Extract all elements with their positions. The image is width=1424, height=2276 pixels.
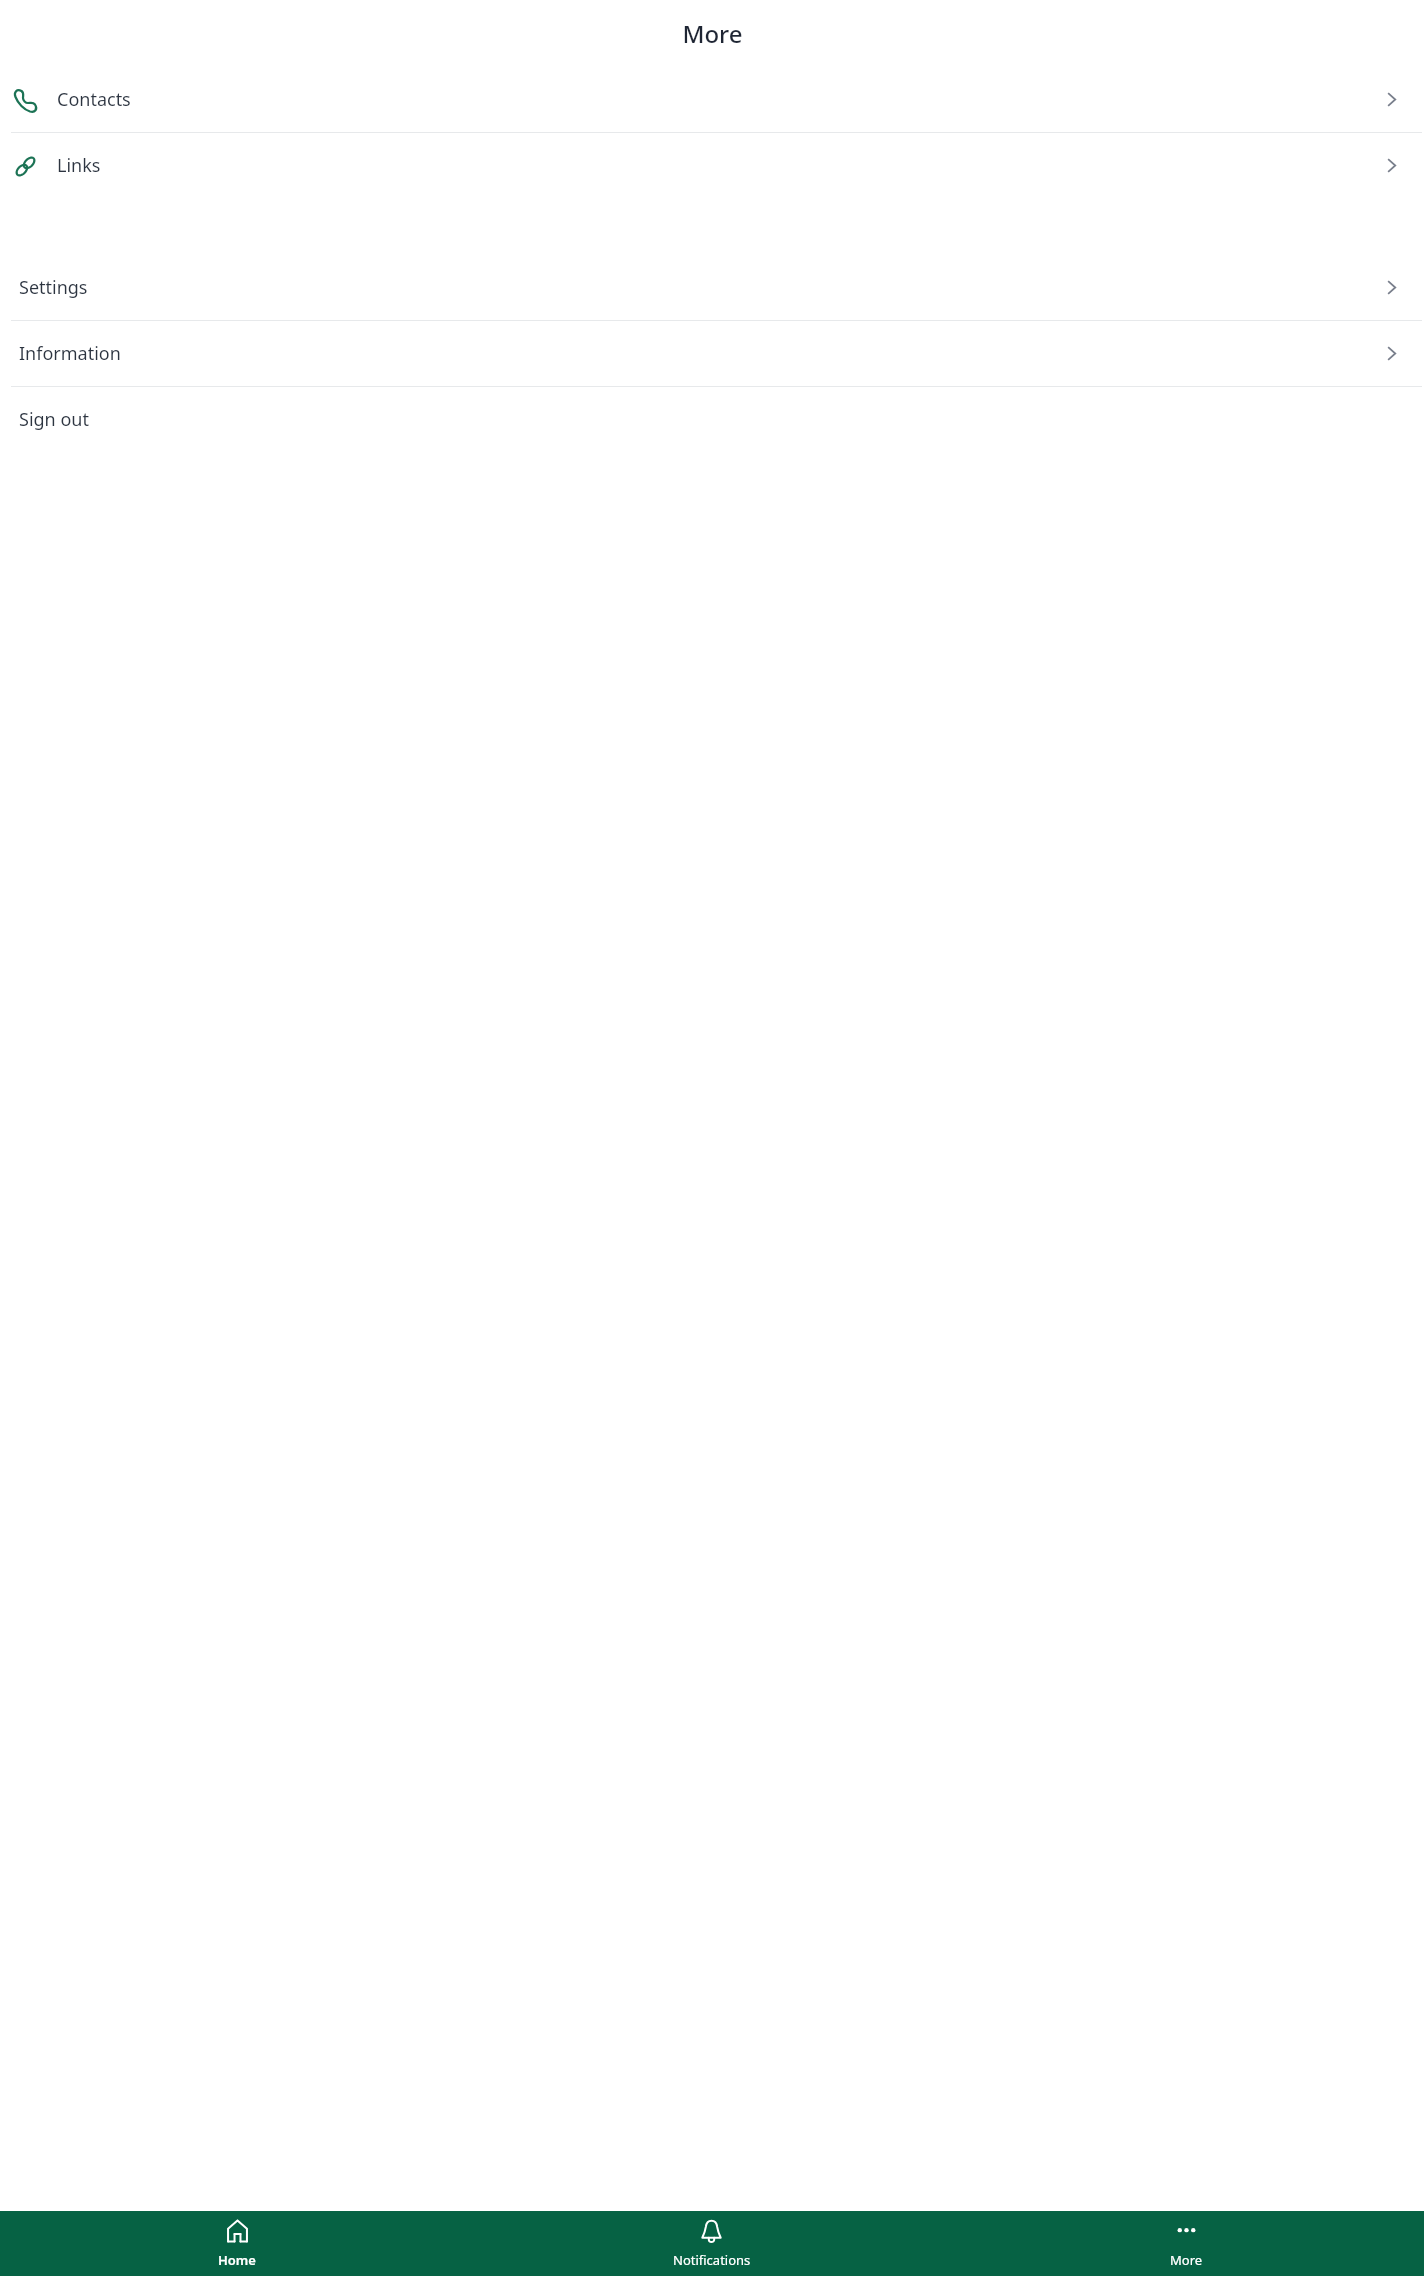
- button[interactable]: More: [949, 2211, 1424, 2276]
- staticText: Contacts: [57, 87, 131, 112]
- button[interactable]: Information: [0, 321, 1424, 386]
- staticText: More: [1170, 2251, 1203, 2269]
- button[interactable]: Contacts: [0, 67, 1424, 132]
- staticText: Settings: [19, 275, 88, 300]
- staticText: Sign out: [19, 407, 89, 432]
- staticText: Home: [218, 2251, 256, 2269]
- other: Notifications: [698, 2218, 725, 2245]
- staticText: More: [682, 17, 743, 50]
- staticText: Links: [57, 153, 101, 178]
- button[interactable]: Settings: [0, 255, 1424, 320]
- button[interactable]: Links: [0, 133, 1424, 198]
- staticText: Notifications: [673, 2251, 751, 2269]
- button[interactable]: Sign out: [0, 387, 1424, 452]
- button[interactable]: Home: [0, 2211, 474, 2276]
- other: Home: [224, 2218, 251, 2245]
- staticText: Information: [19, 341, 121, 366]
- other: More: [1173, 2218, 1200, 2245]
- button[interactable]: Notifications: [474, 2211, 949, 2276]
